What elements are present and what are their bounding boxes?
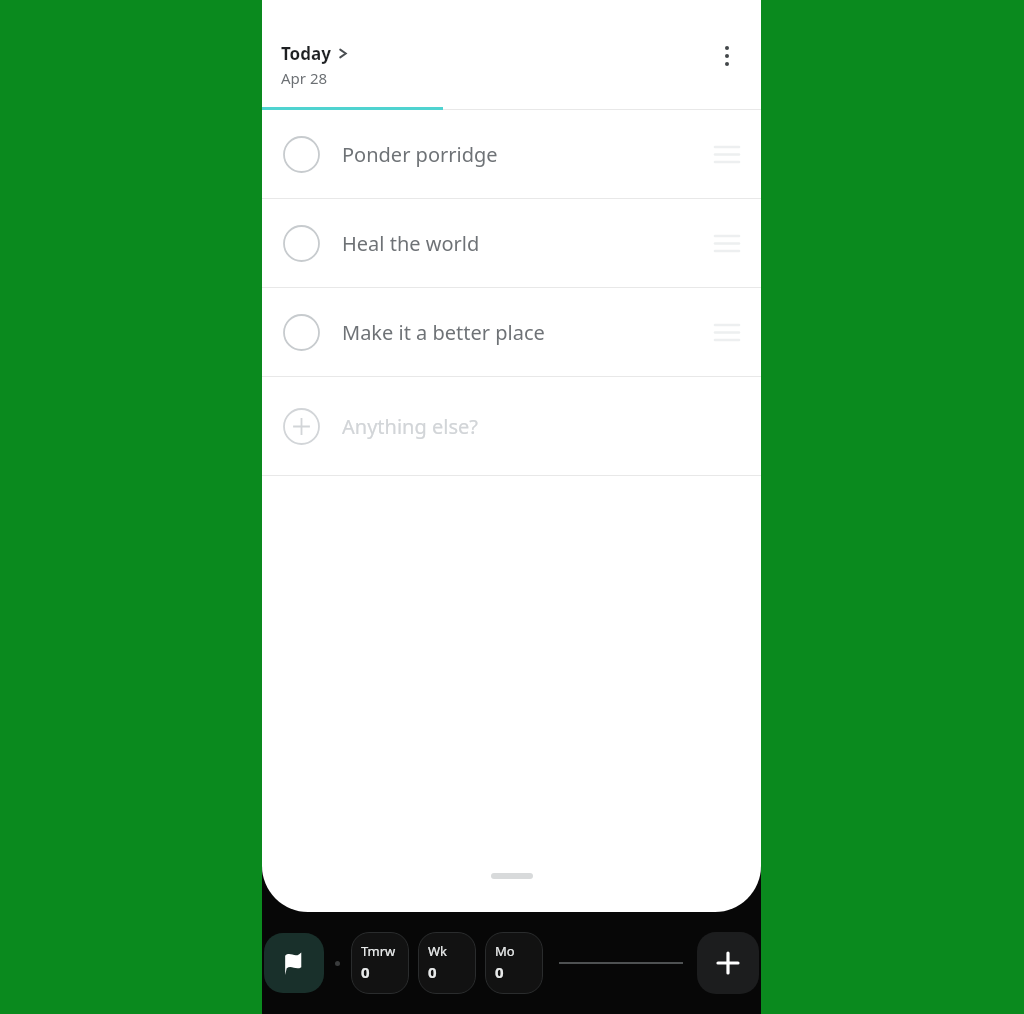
staticText: Make it a better place <box>342 319 709 346</box>
staticText: Apr 28 <box>281 68 328 88</box>
staticText: Wk <box>428 942 448 960</box>
staticText: Ponder porridge <box>342 141 709 168</box>
button[interactable]: More options <box>703 32 751 80</box>
staticText: Anything else? <box>342 413 745 440</box>
button[interactable]: Add task <box>697 932 759 994</box>
staticText: 0 <box>361 962 370 982</box>
button[interactable]: Reorder <box>709 225 745 261</box>
button[interactable]: Heal the world <box>262 199 761 287</box>
button[interactable]: Reorder <box>709 314 745 350</box>
button[interactable]: Tmrw <box>351 932 409 994</box>
button[interactable]: Reorder <box>709 136 745 172</box>
button[interactable]: Today <box>281 40 348 90</box>
button[interactable]: Make it a better place <box>262 288 761 376</box>
button[interactable]: Mo <box>485 932 543 994</box>
staticText: Tmrw <box>361 942 396 960</box>
staticText: 0 <box>495 962 504 982</box>
button[interactable]: Ponder porridge <box>262 110 761 198</box>
button[interactable]: Today tasks <box>264 933 324 993</box>
staticText: 0 <box>428 962 437 982</box>
button[interactable]: Wk <box>418 932 476 994</box>
staticText: Today <box>281 42 331 65</box>
staticText: Heal the world <box>342 230 709 257</box>
button[interactable]: Anything else? <box>262 377 761 475</box>
staticText: Mo <box>495 942 515 960</box>
